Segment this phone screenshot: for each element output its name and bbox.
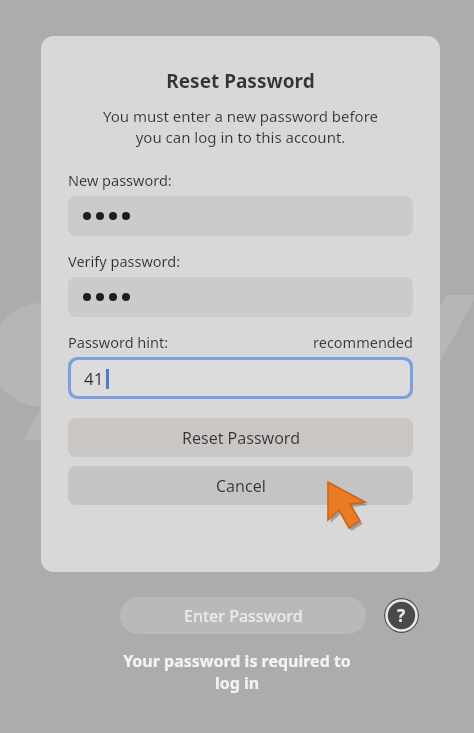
- button[interactable]: [68, 277, 413, 317]
- staticText: recommended: [313, 332, 413, 352]
- staticText: You must enter a new password before you…: [59, 106, 422, 148]
- staticText: ?: [397, 604, 406, 627]
- staticText: New password:: [68, 170, 440, 190]
- button[interactable]: Enter Password: [120, 597, 366, 634]
- staticText: Enter Password: [184, 605, 303, 627]
- button[interactable]: Reset Password: [68, 418, 413, 457]
- button[interactable]: [68, 196, 413, 236]
- staticText: Your password is required to log in: [40, 650, 434, 694]
- button[interactable]: Help: [384, 598, 419, 633]
- staticText: Reset Password: [182, 427, 300, 449]
- staticText: Verify password:: [68, 251, 440, 271]
- staticText: 41: [84, 367, 104, 390]
- button[interactable]: 41: [71, 360, 410, 396]
- staticText: Password hint:: [68, 332, 169, 352]
- staticText: Cancel: [216, 475, 266, 497]
- staticText: Reset Password: [41, 68, 440, 94]
- button[interactable]: Cancel: [68, 466, 413, 505]
